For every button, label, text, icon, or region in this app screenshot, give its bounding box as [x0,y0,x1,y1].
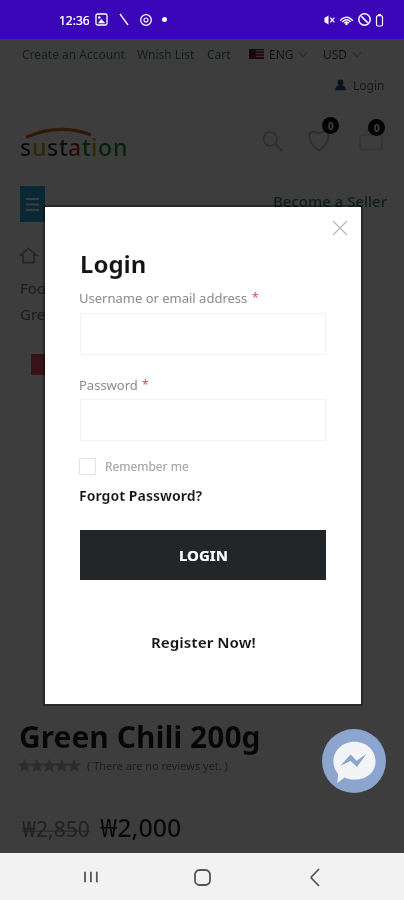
staticText: Username or email address [79,289,248,307]
staticText: o [98,131,113,162]
staticText: a [68,131,82,162]
button[interactable]: Close [327,215,353,241]
button[interactable]: Login [0,77,385,93]
button[interactable]: Forgot Password? [79,486,203,505]
button[interactable]: Food & [20,278,71,298]
button[interactable]: sustation home [20,126,140,164]
staticText: Login [80,247,147,280]
button[interactable]: Remember me [79,457,189,475]
button[interactable]: Cart [355,118,391,154]
button[interactable]: Menu [20,186,45,222]
staticText: 0 [374,121,380,135]
staticText: Password [79,376,138,394]
button[interactable]: Register Now! [151,632,256,652]
button[interactable]: Wnish List [137,46,195,62]
staticText: s [20,131,32,162]
staticText: n [113,131,128,162]
staticText: t [82,131,91,162]
button[interactable]: Back [292,854,338,900]
staticText: Login [353,77,385,93]
button[interactable]: Create an Account [22,46,125,62]
button[interactable]: LOGIN [80,530,326,580]
staticText: Green Chili 200g [19,716,261,757]
button[interactable]: Search [262,131,284,153]
button[interactable]: ENG [269,46,294,62]
staticText: LOGIN [179,545,228,565]
staticText: t [59,131,68,162]
button[interactable]: Become a Seller [273,191,388,211]
button[interactable]: Recent apps [67,854,113,900]
button[interactable]: USD [323,46,348,62]
staticText: ₩2,000 [100,810,182,844]
staticText: ( There are no reviews yet. ) [87,758,228,773]
staticText: ₩2,850 [22,815,90,844]
button[interactable]: Cart [207,46,231,62]
staticText: Green C [20,304,77,324]
button[interactable]: Home [179,854,225,900]
staticText: s [47,131,59,162]
button[interactable]: Messenger chat [322,729,386,793]
staticText: Remember me [105,458,189,474]
staticText: u [32,131,47,162]
staticText: i [91,131,98,162]
staticText: * [142,376,149,392]
button[interactable]: Wish list [302,116,340,154]
staticText: 12:36 [59,12,90,28]
staticText: * [252,289,259,305]
staticText: 0 [328,119,334,133]
